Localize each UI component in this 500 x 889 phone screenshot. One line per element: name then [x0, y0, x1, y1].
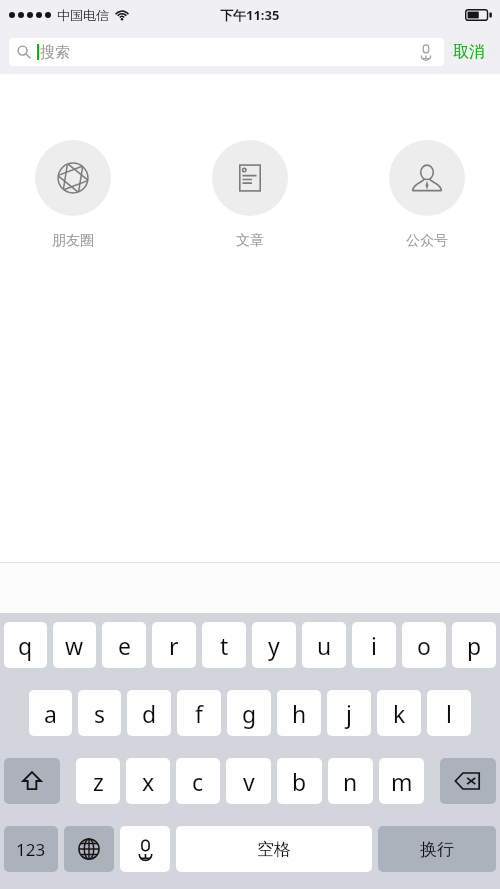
button[interactable]: y — [252, 622, 296, 668]
button[interactable]: z — [76, 758, 120, 804]
button[interactable]: 123 — [4, 826, 58, 872]
staticText: y — [268, 630, 280, 661]
button[interactable]: 换行 — [378, 826, 496, 872]
button[interactable]: 取消 — [444, 38, 494, 66]
button[interactable]: 搜索 — [9, 38, 444, 66]
button[interactable]: d — [127, 690, 171, 736]
staticText: v — [243, 766, 255, 797]
staticText: c — [192, 766, 204, 797]
staticText: w — [65, 630, 84, 661]
button[interactable]: q — [4, 622, 47, 668]
button[interactable]: v — [226, 758, 271, 804]
button[interactable]: 空格 — [176, 826, 372, 872]
button[interactable]: u — [302, 622, 346, 668]
button[interactable]: Shift — [4, 758, 60, 804]
button[interactable]: a — [29, 690, 72, 736]
button[interactable]: Delete — [440, 758, 496, 804]
button[interactable]: r — [152, 622, 196, 668]
button[interactable]: Dictation — [120, 826, 170, 872]
staticText: 朋友圈 — [52, 232, 94, 250]
staticText: m — [391, 766, 413, 797]
button[interactable]: g — [227, 690, 271, 736]
staticText: e — [118, 630, 131, 661]
staticText: 下午11:35 — [220, 6, 280, 24]
button[interactable]: i — [352, 622, 396, 668]
staticText: z — [93, 766, 104, 797]
staticText: b — [292, 766, 307, 797]
button[interactable]: c — [176, 758, 220, 804]
staticText: 123 — [16, 838, 46, 861]
staticText: o — [417, 630, 431, 661]
staticText: f — [195, 698, 203, 729]
button[interactable]: o — [402, 622, 446, 668]
staticText: 取消 — [453, 42, 485, 62]
staticText: l — [446, 698, 452, 729]
staticText: q — [18, 630, 33, 661]
staticText: p — [467, 630, 482, 661]
staticText: 中国电信 — [57, 7, 109, 23]
staticText: 公众号 — [406, 232, 448, 250]
button[interactable]: Voice search — [416, 42, 436, 62]
button[interactable]: l — [427, 690, 471, 736]
staticText: h — [292, 698, 307, 729]
button[interactable]: f — [177, 690, 221, 736]
button[interactable]: 公众号 — [368, 140, 486, 250]
staticText: 搜索 — [40, 43, 70, 62]
button[interactable]: 朋友圈 — [14, 140, 132, 250]
staticText: k — [393, 698, 406, 729]
button[interactable]: n — [328, 758, 373, 804]
button[interactable]: k — [377, 690, 421, 736]
staticText: i — [371, 630, 377, 661]
button[interactable]: j — [327, 690, 371, 736]
button[interactable]: Change keyboard — [64, 826, 114, 872]
staticText: x — [142, 766, 155, 797]
staticText: u — [317, 630, 332, 661]
staticText: r — [169, 630, 179, 661]
staticText: g — [242, 698, 257, 729]
button[interactable]: w — [53, 622, 96, 668]
staticText: t — [220, 630, 229, 661]
button[interactable]: s — [78, 690, 121, 736]
button[interactable]: m — [379, 758, 424, 804]
staticText: n — [343, 766, 358, 797]
button[interactable]: x — [126, 758, 170, 804]
staticText: 换行 — [420, 839, 454, 860]
staticText: d — [142, 698, 157, 729]
staticText: j — [346, 698, 352, 729]
staticText: a — [44, 698, 57, 729]
staticText: 空格 — [257, 839, 291, 860]
button[interactable]: t — [202, 622, 246, 668]
button[interactable]: e — [102, 622, 146, 668]
button[interactable]: h — [277, 690, 321, 736]
button[interactable]: b — [277, 758, 322, 804]
button[interactable]: 文章 — [191, 140, 309, 250]
staticText: 文章 — [236, 232, 264, 250]
button[interactable]: p — [452, 622, 496, 668]
staticText: s — [94, 698, 106, 729]
